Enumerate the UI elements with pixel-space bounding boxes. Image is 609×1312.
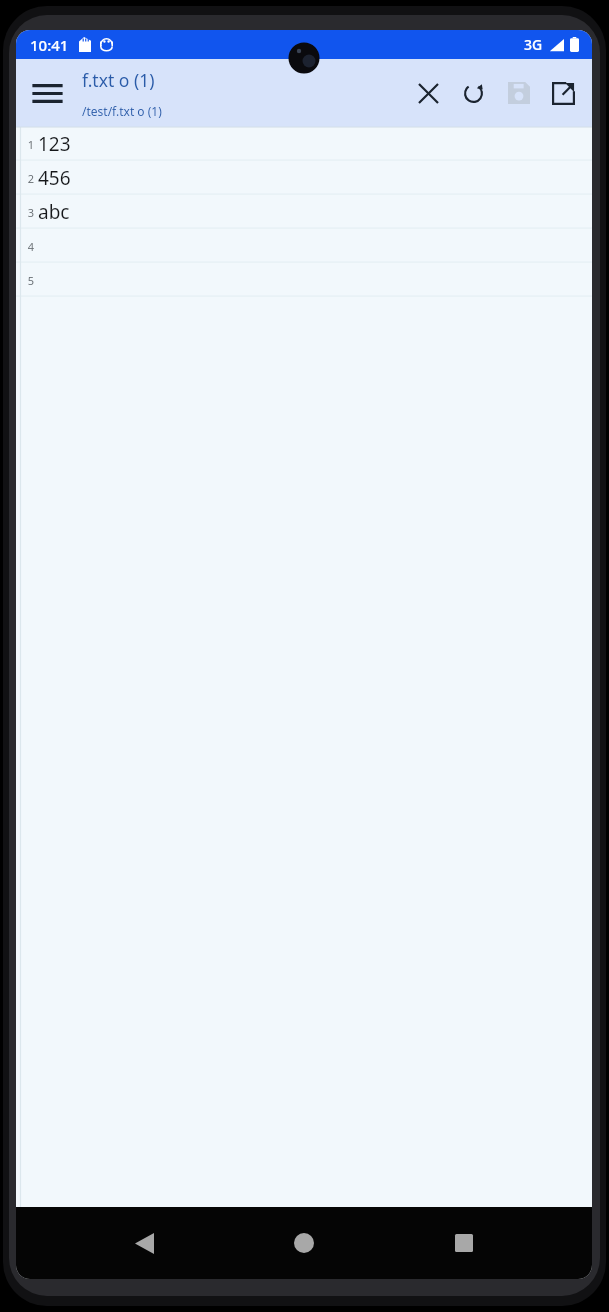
staticText: 2	[27, 171, 34, 186]
staticText: 1	[27, 137, 34, 152]
staticText: 5	[27, 273, 34, 288]
button[interactable]: Save file	[496, 59, 541, 127]
button[interactable]: Close file	[406, 59, 451, 127]
button[interactable]: f.txt o (1)	[78, 59, 406, 127]
staticText: 123	[38, 131, 71, 157]
staticText: 3	[27, 205, 34, 220]
button[interactable]: Reload file	[451, 59, 496, 127]
staticText: 4	[27, 239, 34, 254]
button[interactable]: Back	[112, 1211, 176, 1275]
button[interactable]: Open navigation menu	[16, 59, 78, 127]
button[interactable]: 1	[16, 127, 592, 1207]
staticText: 456	[38, 165, 71, 191]
button[interactable]: Recent apps	[432, 1211, 496, 1275]
staticText: /test/f.txt o (1)	[82, 103, 162, 119]
staticText: 10:41	[30, 35, 69, 55]
staticText: f.txt o (1)	[82, 68, 155, 92]
staticText: abc	[38, 199, 70, 225]
staticText: 3G	[524, 35, 543, 54]
button[interactable]: Open in another app	[541, 59, 586, 127]
button[interactable]: Home	[272, 1211, 336, 1275]
